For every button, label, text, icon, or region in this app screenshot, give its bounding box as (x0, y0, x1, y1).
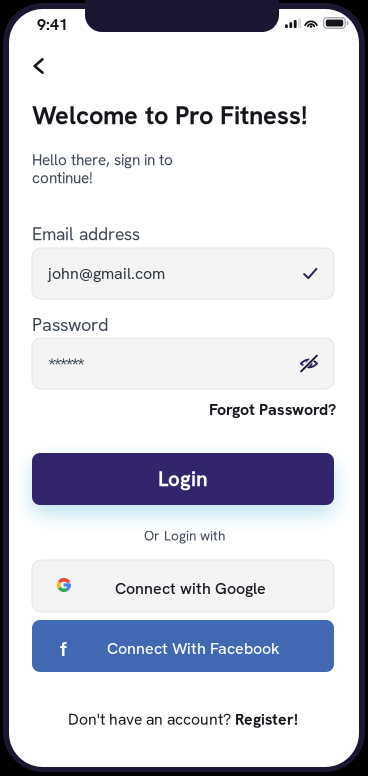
button[interactable]: Forgot Password? (209, 399, 336, 420)
staticText: Don't have an account? (68, 709, 235, 729)
staticText: f (60, 636, 67, 662)
staticText: Or Login with (144, 527, 225, 545)
button[interactable]: Login (32, 453, 334, 505)
staticText: Register! (235, 709, 298, 729)
button[interactable]: Back (20, 49, 56, 83)
staticText: Login (158, 465, 208, 492)
staticText: 9:41 (37, 14, 68, 35)
staticText: Password (32, 313, 109, 336)
staticText: Welcome to Pro Fitness! (32, 99, 307, 132)
staticText: Email address (32, 223, 140, 246)
button[interactable]: Don't have an account? (68, 709, 298, 729)
staticText: ****** (48, 352, 85, 379)
staticText: john@gmail.com (48, 263, 165, 284)
staticText: Connect with Google (115, 578, 266, 599)
button[interactable]: Show password (294, 348, 324, 378)
button[interactable]: Connect with Google (32, 560, 334, 612)
staticText: Forgot Password? (209, 399, 336, 420)
staticText: Connect With Facebook (107, 638, 280, 659)
staticText: Hello there, sign in to (32, 150, 173, 170)
staticText: continue! (32, 168, 93, 188)
button[interactable]: f (32, 620, 334, 672)
